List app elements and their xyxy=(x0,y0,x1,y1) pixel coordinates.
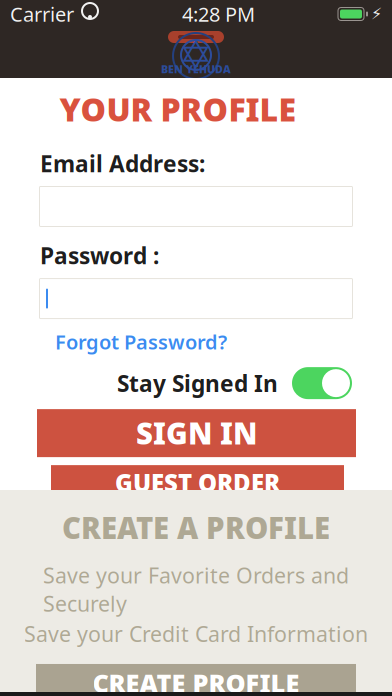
staticText: Password : xyxy=(40,240,159,271)
staticText: Email Address: xyxy=(40,148,205,178)
staticText: ⚡︎ xyxy=(371,5,382,23)
staticText: BEN YEHUDA xyxy=(161,62,231,76)
staticText: CREATE A PROFILE xyxy=(62,508,330,547)
button[interactable]: GUEST ORDER xyxy=(51,465,344,500)
staticText: Save your Credit Card Information xyxy=(24,620,368,648)
staticText: ✡ xyxy=(179,32,213,78)
staticText: Forgot Password? xyxy=(55,329,227,355)
staticText: GUEST ORDER xyxy=(115,467,280,499)
button[interactable]: CREATE PROFILE xyxy=(36,664,356,696)
staticText: Save your Favorite Orders and Securely xyxy=(43,561,349,618)
button[interactable]: SIGN IN xyxy=(37,409,356,457)
staticText: CREATE PROFILE xyxy=(92,666,299,696)
staticText: YOUR PROFILE xyxy=(59,88,296,130)
button[interactable]: Stay Signed In xyxy=(292,367,352,399)
staticText: Stay Signed In xyxy=(117,368,278,398)
staticText: Carrier xyxy=(10,1,74,27)
staticText: SIGN IN xyxy=(136,414,257,453)
staticText: 4:28 PM xyxy=(182,1,255,27)
button[interactable]: Forgot Password? xyxy=(0,325,392,359)
